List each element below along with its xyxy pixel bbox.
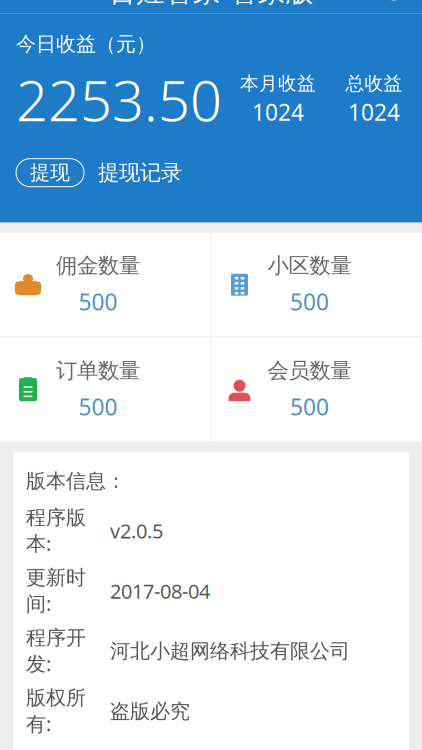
staticText: 2017-08-04 [110,578,210,604]
staticText: 1024 [348,97,400,127]
button[interactable]: 小区数量 [211,233,422,337]
button[interactable]: 会员数量 [211,338,422,442]
staticText: 更新时间: [26,565,86,616]
staticText: 订单数量 [56,358,140,384]
staticText: 500 [290,287,329,317]
button[interactable]: 订单数量 [0,338,210,442]
staticText: 盗版必究 [110,699,190,723]
staticText: 本月收益 [240,72,316,95]
staticText: 2253.50 [16,62,222,137]
staticText: 程序开发: [26,625,86,677]
staticText: 总收益 [345,72,402,95]
staticText: 版本信息： [26,469,126,493]
staticText: 小区数量 [267,253,351,279]
staticText: 河北小超网络科技有限公司 [110,639,350,663]
staticText: 500 [290,392,329,422]
staticText: 程序版本: [26,505,86,556]
staticText: 今日收益（元） [16,32,156,56]
staticText: 版权所有: [26,686,86,737]
staticText: 会员数量 [267,358,351,384]
button[interactable]: 提现记录 [98,159,182,186]
button[interactable]: Settings [374,0,414,11]
button[interactable]: 佣金数量 [0,233,210,337]
staticText: 提现 [30,160,70,185]
staticText: 提现记录 [98,159,182,186]
button[interactable]: 提现 [16,159,84,187]
staticText: 500 [78,287,117,317]
staticText: 500 [78,392,117,422]
staticText: 百姓管家-管家版 [108,0,313,9]
staticText: v2.0.5 [110,518,163,544]
staticText: 1024 [252,97,304,127]
staticText: 佣金数量 [56,253,140,279]
